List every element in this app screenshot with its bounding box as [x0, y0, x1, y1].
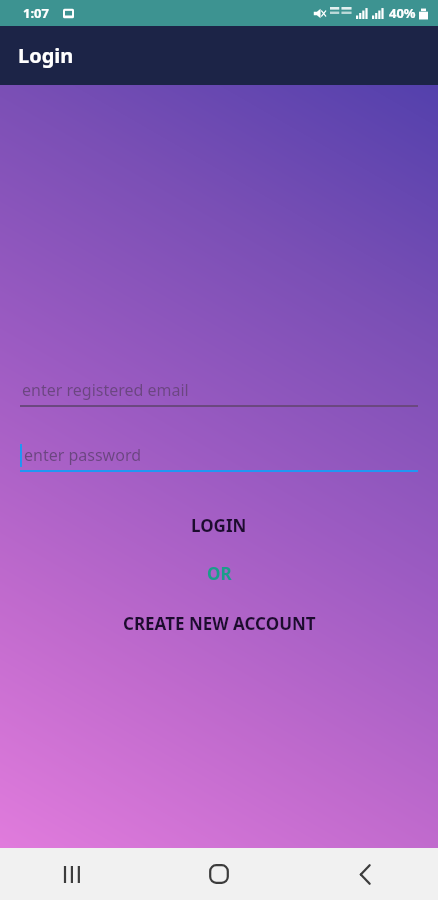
button[interactable]: Back	[292, 848, 438, 900]
staticText: 1:07	[23, 4, 49, 22]
staticText: Login	[18, 42, 74, 69]
button[interactable]: enter registered email	[20, 375, 418, 407]
staticText: OR	[207, 562, 232, 585]
button[interactable]: CREATE NEW ACCOUNT	[0, 607, 438, 639]
button[interactable]: LOGIN	[0, 509, 438, 541]
staticText: CREATE NEW ACCOUNT	[123, 612, 316, 635]
staticText: LOGIN	[191, 514, 247, 537]
button[interactable]: enter password	[20, 440, 418, 472]
button[interactable]: Home	[146, 848, 292, 900]
staticText: enter registered email	[22, 379, 189, 401]
staticText: 40%	[389, 4, 416, 22]
staticText: enter password	[24, 444, 142, 466]
button[interactable]: Recent apps	[0, 848, 146, 900]
